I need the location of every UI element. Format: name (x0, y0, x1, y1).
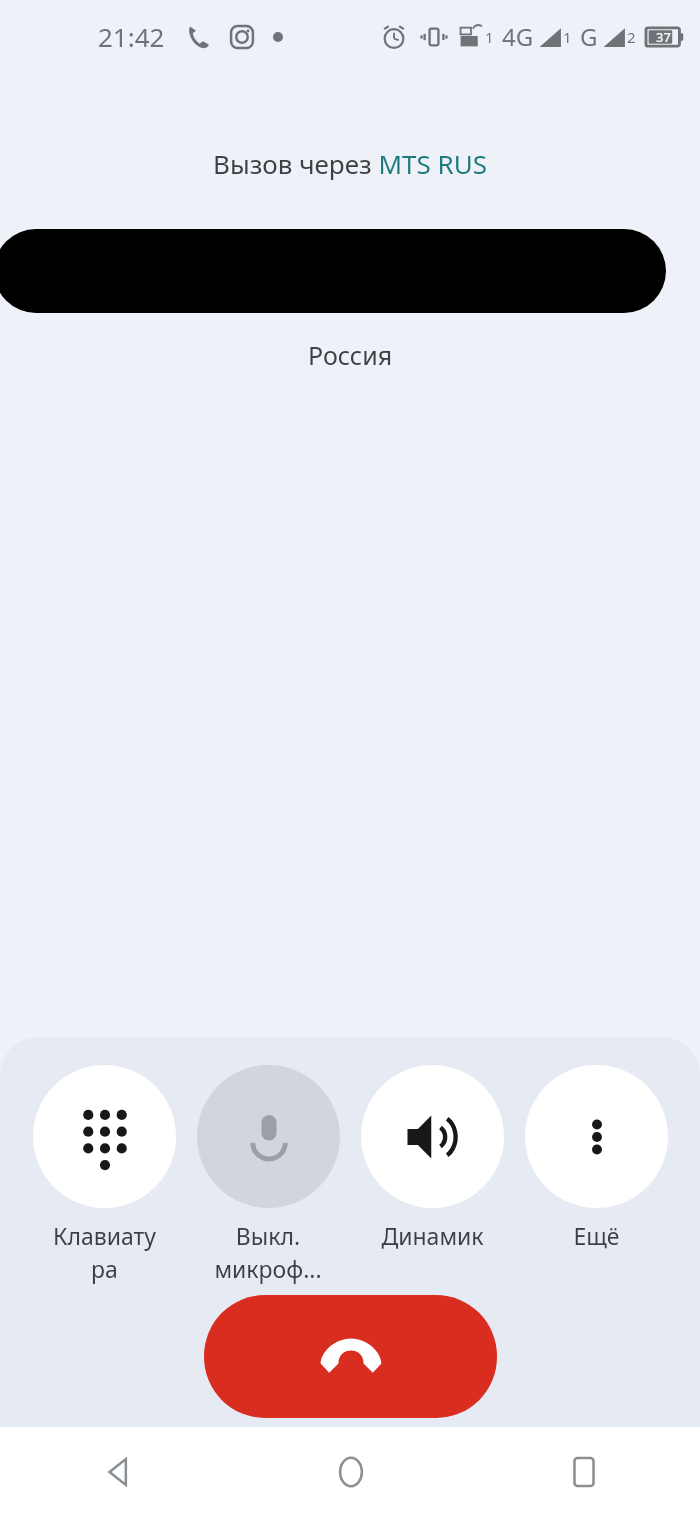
button[interactable]: More options (522, 1065, 670, 1251)
staticText: Динамик (381, 1220, 484, 1251)
staticText: Вызов через MTS RUS (213, 146, 487, 181)
button[interactable]: Speaker (358, 1065, 506, 1251)
staticText: 1 (485, 27, 494, 47)
button[interactable]: Back (0, 1427, 234, 1517)
staticText: G (580, 20, 598, 53)
button[interactable]: Dialpad (30, 1065, 178, 1285)
staticText: 21:42 (98, 19, 165, 54)
button[interactable]: Mute microphone (194, 1065, 342, 1285)
staticText: 4G (502, 20, 534, 53)
staticText: Выкл. микроф... (214, 1220, 322, 1285)
staticText: Россия (308, 338, 393, 372)
staticText: 2 (627, 27, 636, 47)
staticText: 1 (563, 27, 572, 47)
staticText: 37 (656, 28, 671, 46)
button[interactable]: End call (204, 1295, 497, 1418)
staticText: Клавиату ра (53, 1220, 156, 1285)
staticText: Ещё (573, 1220, 620, 1251)
button[interactable]: Home (234, 1427, 467, 1517)
button[interactable]: Recent apps (467, 1427, 700, 1517)
